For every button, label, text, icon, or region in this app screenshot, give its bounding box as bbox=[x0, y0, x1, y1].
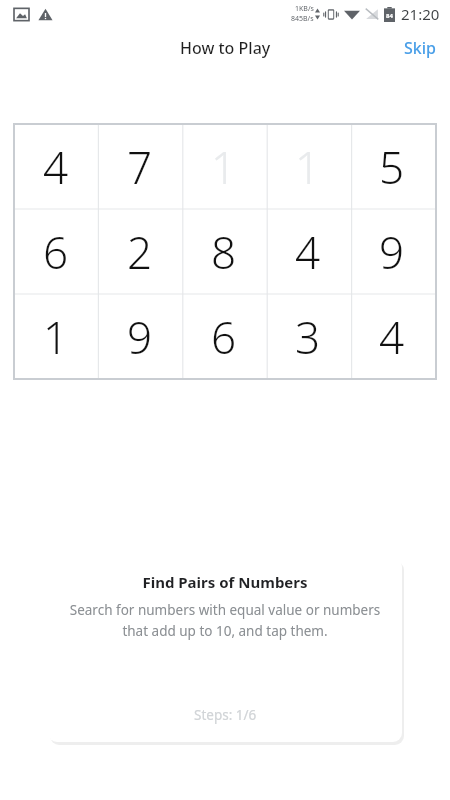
button[interactable]: Skip bbox=[390, 31, 450, 65]
staticText: 845B/s bbox=[291, 14, 314, 24]
button[interactable]: 9 bbox=[98, 294, 182, 379]
button[interactable]: 9 bbox=[350, 209, 434, 294]
staticText: How to Play bbox=[180, 37, 271, 59]
button[interactable]: 8 bbox=[182, 209, 266, 294]
button[interactable]: 1 bbox=[266, 124, 350, 209]
button[interactable]: 4 bbox=[14, 124, 98, 209]
button[interactable]: 4 bbox=[350, 294, 434, 379]
staticText: Skip bbox=[404, 37, 436, 59]
staticText: 1 bbox=[211, 137, 237, 197]
button[interactable]: 3 bbox=[266, 294, 350, 379]
staticText: 84 bbox=[386, 12, 393, 20]
button[interactable]: 5 bbox=[350, 124, 434, 209]
button[interactable]: 2 bbox=[98, 209, 182, 294]
button[interactable]: 1 bbox=[14, 294, 98, 379]
staticText: Search for numbers with equal value or n… bbox=[64, 601, 386, 640]
button[interactable]: 6 bbox=[14, 209, 98, 294]
staticText: 1KB/s bbox=[295, 4, 314, 14]
staticText: 9 bbox=[379, 222, 405, 282]
staticText: 1 bbox=[295, 137, 321, 197]
staticText: 6 bbox=[43, 222, 69, 282]
button[interactable]: 6 bbox=[182, 294, 266, 379]
staticText: 21:20 bbox=[401, 4, 440, 24]
staticText: 7 bbox=[127, 137, 153, 197]
staticText: Find Pairs of Numbers bbox=[142, 572, 308, 592]
staticText: 8 bbox=[211, 222, 237, 282]
staticText: 2 bbox=[127, 222, 153, 282]
staticText: Steps: 1/6 bbox=[194, 706, 257, 724]
button[interactable]: 4 bbox=[266, 209, 350, 294]
staticText: 4 bbox=[43, 137, 69, 197]
staticText: 4 bbox=[379, 307, 405, 367]
staticText: 1 bbox=[43, 307, 69, 367]
button[interactable]: 7 bbox=[98, 124, 182, 209]
staticText: 9 bbox=[127, 307, 153, 367]
staticText: 6 bbox=[211, 307, 237, 367]
button[interactable]: Find Pairs of Numbers bbox=[48, 558, 402, 742]
staticText: 4 bbox=[295, 222, 321, 282]
staticText: 5 bbox=[379, 137, 405, 197]
staticText: 3 bbox=[295, 307, 321, 367]
button[interactable]: 1 bbox=[182, 124, 266, 209]
